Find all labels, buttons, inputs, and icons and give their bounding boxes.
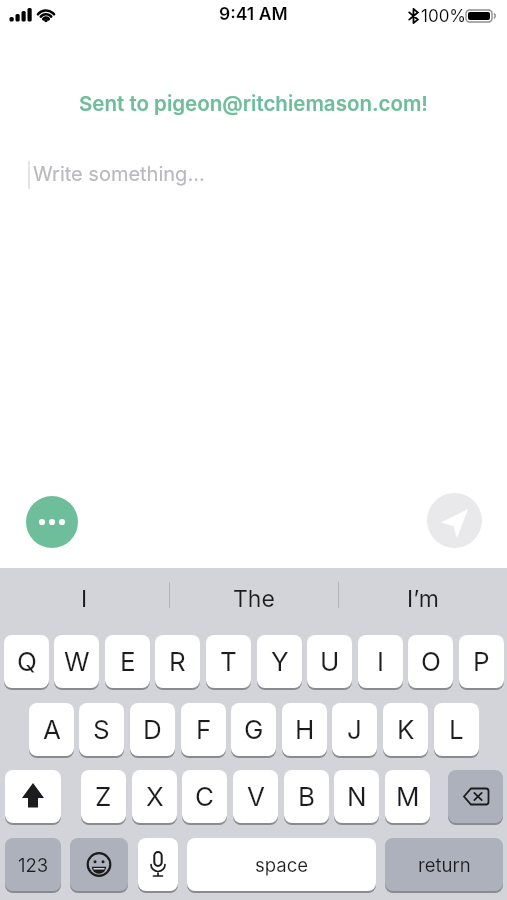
staticText: R	[169, 646, 186, 677]
button[interactable]	[427, 493, 482, 548]
button[interactable]: U	[307, 635, 352, 688]
button[interactable]: P	[459, 635, 504, 688]
button[interactable]: D	[130, 703, 175, 756]
staticText: X	[146, 781, 164, 812]
button[interactable]	[5, 770, 61, 823]
staticText: A	[43, 714, 61, 745]
staticText: Sent to pigeon@ritchiemason.com!	[79, 91, 428, 116]
button[interactable]: The	[169, 578, 338, 620]
staticText: E	[120, 646, 136, 677]
button[interactable]: V	[233, 770, 278, 823]
staticText: Write something...	[33, 162, 205, 186]
button[interactable]	[448, 770, 503, 823]
staticText: N	[347, 781, 367, 812]
staticText: Z	[95, 781, 112, 812]
staticText: I’m	[407, 585, 439, 613]
staticText: F	[196, 714, 212, 745]
button[interactable]: space	[187, 838, 376, 891]
staticText: O	[421, 646, 441, 677]
staticText: T	[220, 646, 237, 677]
button[interactable]: E	[105, 635, 150, 688]
button[interactable]: A	[29, 703, 74, 756]
staticText: Q	[17, 646, 37, 677]
staticText: H	[295, 714, 315, 745]
button[interactable]: Z	[81, 770, 126, 823]
staticText: W	[64, 646, 90, 677]
staticText: U	[320, 646, 340, 677]
button[interactable]: I	[0, 578, 169, 620]
button[interactable]: O	[408, 635, 453, 688]
staticText: P	[473, 646, 490, 677]
button[interactable]: G	[231, 703, 276, 756]
staticText: K	[397, 714, 415, 745]
staticText: G	[244, 714, 264, 745]
button[interactable]	[26, 496, 78, 548]
staticText: B	[298, 781, 316, 812]
staticText: 9:41 AM	[219, 3, 288, 24]
staticText: L	[449, 714, 464, 745]
button[interactable]: W	[54, 635, 99, 688]
button[interactable]	[138, 838, 178, 891]
staticText: The	[233, 585, 275, 613]
staticText: 123	[18, 854, 49, 876]
button[interactable]: K	[383, 703, 428, 756]
button[interactable]: I’m	[338, 578, 507, 620]
staticText: S	[93, 714, 110, 745]
staticText: Y	[271, 646, 289, 677]
button[interactable]: I	[358, 635, 403, 688]
button[interactable]: S	[79, 703, 124, 756]
staticText: J	[347, 714, 362, 745]
button[interactable]: F	[181, 703, 226, 756]
button[interactable]: Y	[257, 635, 302, 688]
staticText: I	[377, 646, 384, 677]
staticText: C	[195, 781, 214, 812]
button[interactable]: return	[385, 838, 503, 891]
staticText: 100%	[421, 6, 467, 27]
staticText: space	[255, 854, 309, 876]
staticText: D	[143, 714, 162, 745]
staticText: M	[396, 781, 420, 812]
button[interactable]: L	[434, 703, 479, 756]
button[interactable]: M	[385, 770, 430, 823]
button[interactable]	[70, 838, 128, 891]
button[interactable]: B	[284, 770, 329, 823]
button[interactable]: H	[282, 703, 327, 756]
staticText: return	[418, 854, 471, 876]
button[interactable]: J	[332, 703, 377, 756]
button[interactable]: C	[182, 770, 227, 823]
button[interactable]: T	[206, 635, 251, 688]
staticText: I	[81, 585, 88, 613]
button[interactable]: Q	[4, 635, 49, 688]
button[interactable]: R	[155, 635, 200, 688]
staticText: V	[247, 781, 265, 812]
button[interactable]: 123	[5, 838, 61, 891]
button[interactable]: X	[132, 770, 177, 823]
button[interactable]: N	[334, 770, 379, 823]
